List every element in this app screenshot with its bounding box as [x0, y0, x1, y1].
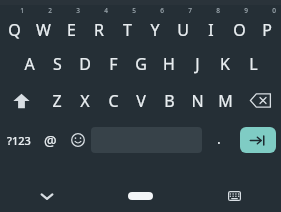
button[interactable]: A	[15, 45, 43, 82]
button[interactable]: C	[99, 82, 127, 119]
staticText: 9	[244, 6, 248, 15]
button[interactable]: Shift	[0, 82, 43, 119]
button[interactable]: G	[127, 45, 155, 82]
staticText: F	[109, 53, 118, 75]
staticText: 3	[76, 6, 80, 15]
button[interactable]: Backspace	[239, 82, 281, 119]
button[interactable]: 9	[225, 5, 253, 45]
button[interactable]: Z	[43, 82, 71, 119]
button[interactable]: D	[71, 45, 99, 82]
staticText: E	[67, 19, 76, 41]
staticText: Z	[52, 90, 62, 112]
staticText: 4	[104, 6, 108, 15]
button[interactable]: 3	[57, 5, 85, 45]
button[interactable]: F	[99, 45, 127, 82]
staticText: .	[217, 129, 221, 148]
staticText: N	[191, 90, 204, 112]
staticText: A	[24, 53, 35, 75]
staticText: C	[108, 90, 119, 112]
button[interactable]: Change keyboard	[187, 180, 281, 212]
button[interactable]: 2	[29, 5, 57, 45]
staticText: I	[208, 19, 214, 41]
button[interactable]: .	[202, 119, 235, 161]
button[interactable]: 0	[253, 5, 281, 45]
staticText: 7	[188, 6, 192, 15]
button[interactable]: 8	[197, 5, 225, 45]
staticText: 5	[132, 6, 136, 15]
button[interactable]: 4	[85, 5, 113, 45]
staticText: J	[195, 53, 200, 75]
button[interactable]: X	[71, 82, 99, 119]
button[interactable]: Hide keyboard	[0, 180, 93, 212]
staticText: L	[249, 53, 258, 75]
button[interactable]: Next	[240, 127, 276, 153]
staticText: S	[53, 53, 62, 75]
staticText: M	[218, 90, 233, 112]
staticText: @	[44, 131, 57, 150]
staticText: U	[177, 19, 189, 41]
staticText: T	[123, 19, 132, 41]
button[interactable]: @	[37, 119, 64, 161]
staticText: K	[220, 53, 230, 75]
button[interactable]: S	[43, 45, 71, 82]
staticText: R	[94, 19, 104, 41]
staticText: 0	[272, 6, 276, 15]
staticText: 2	[48, 6, 52, 15]
button[interactable]: ?123	[0, 119, 37, 161]
staticText: ?123	[7, 133, 31, 148]
button[interactable]: J	[183, 45, 211, 82]
button[interactable]: K	[211, 45, 239, 82]
button[interactable]: Emoji	[64, 119, 91, 161]
staticText: 1	[20, 6, 24, 15]
staticText: V	[136, 90, 146, 112]
staticText: G	[135, 53, 147, 75]
staticText: Y	[150, 19, 160, 41]
staticText: W	[36, 19, 51, 41]
staticText: 6	[160, 6, 164, 15]
button[interactable]: 6	[141, 5, 169, 45]
button[interactable]: Home	[93, 180, 187, 212]
button[interactable]: 1	[0, 5, 29, 45]
button[interactable]: 7	[169, 5, 197, 45]
button[interactable]: 5	[113, 5, 141, 45]
button[interactable]: B	[155, 82, 183, 119]
staticText: X	[80, 90, 90, 112]
staticText: P	[262, 19, 272, 41]
button[interactable]: V	[127, 82, 155, 119]
staticText: Q	[8, 19, 21, 41]
staticText: 8	[216, 6, 220, 15]
button[interactable]: H	[155, 45, 183, 82]
staticText: H	[163, 53, 175, 75]
button[interactable]: N	[183, 82, 211, 119]
button[interactable]: M	[211, 82, 239, 119]
button[interactable]: L	[239, 45, 267, 82]
staticText: D	[79, 53, 91, 75]
staticText: B	[164, 90, 175, 112]
staticText: O	[233, 19, 246, 41]
